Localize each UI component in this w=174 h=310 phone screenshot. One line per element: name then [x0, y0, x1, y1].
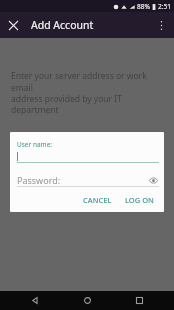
- button[interactable]: Back: [18, 291, 52, 310]
- staticText: LOG ON: [125, 195, 154, 205]
- staticText: User name:: [17, 140, 53, 149]
- staticText: Password:: [17, 174, 61, 186]
- staticText: Enter your server address or work email …: [11, 70, 163, 116]
- button[interactable]: [17, 151, 159, 162]
- button[interactable]: CANCEL: [78, 192, 117, 208]
- button[interactable]: Show password: [147, 174, 159, 186]
- button[interactable]: Home: [70, 291, 104, 310]
- button[interactable]: Password:: [17, 174, 159, 186]
- button[interactable]: More options: [148, 12, 174, 38]
- button[interactable]: LOG ON: [120, 192, 159, 208]
- button[interactable]: Close: [0, 12, 26, 38]
- staticText: 2:51: [158, 2, 171, 11]
- staticText: Add Account: [31, 18, 94, 32]
- button[interactable]: Recent apps: [122, 291, 156, 310]
- staticText: 88%: [137, 2, 150, 11]
- staticText: CANCEL: [83, 195, 112, 205]
